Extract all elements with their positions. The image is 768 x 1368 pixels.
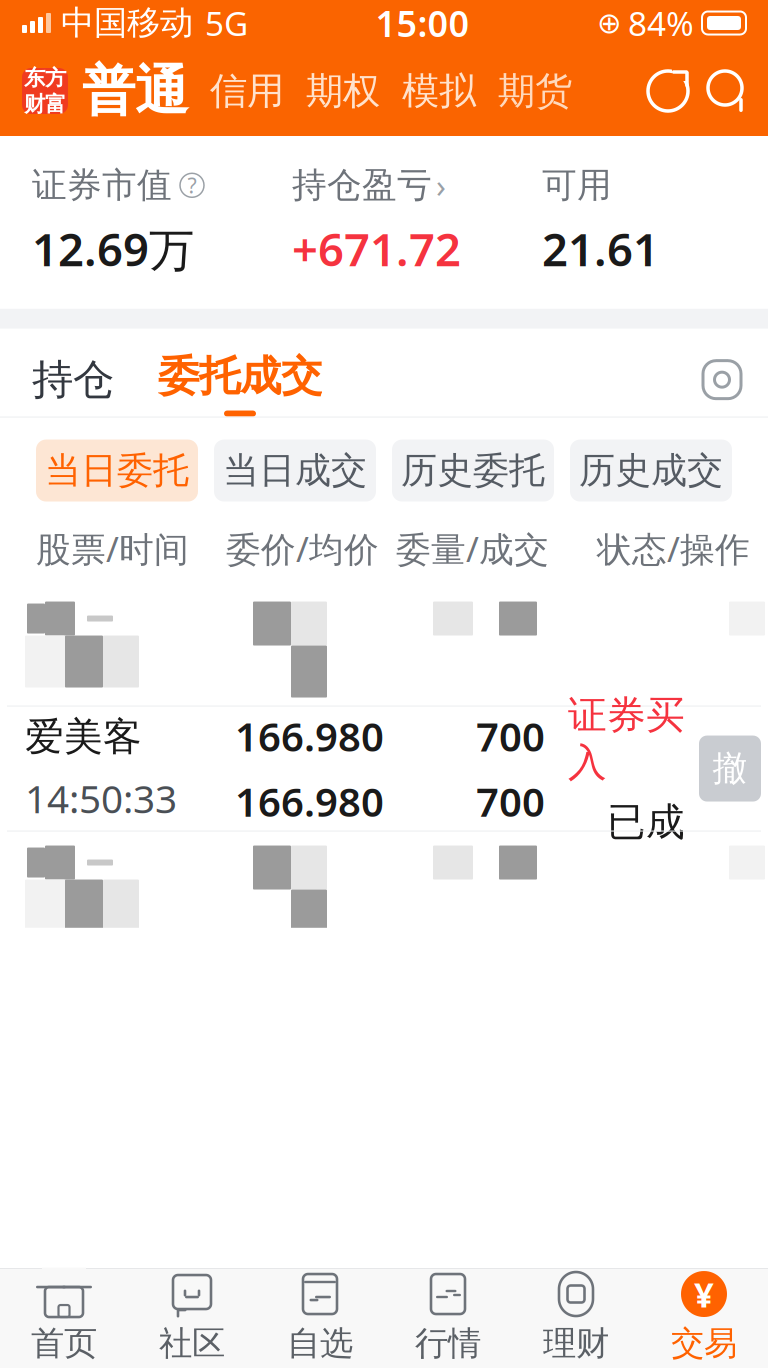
button[interactable]: 历史成交	[570, 439, 732, 501]
staticText: 证券买入	[568, 691, 685, 786]
staticText: 166.980	[235, 774, 384, 828]
button[interactable]: 信用	[188, 68, 284, 114]
button[interactable]: ¥	[640, 1261, 768, 1368]
staticText: 持仓	[32, 354, 114, 405]
staticText: 股票/时间	[36, 525, 189, 571]
staticText: 可用	[542, 164, 612, 207]
button[interactable]: 普通	[68, 58, 188, 124]
staticText: 行情	[415, 1323, 481, 1364]
staticText: ¥	[694, 1271, 714, 1317]
button[interactable]: 首页	[0, 1261, 128, 1368]
staticText: 21.61	[542, 219, 659, 279]
staticText: 委量/成交	[396, 525, 549, 571]
staticText: 财富	[24, 91, 66, 117]
button[interactable]: 理财	[512, 1261, 640, 1368]
staticText: +671.72	[292, 219, 461, 279]
staticText: 社区	[159, 1323, 225, 1364]
button[interactable]: 模拟	[380, 68, 476, 114]
staticText: 700	[476, 709, 545, 762]
staticText: 持仓盈亏	[292, 164, 432, 207]
staticText: 当日成交	[223, 448, 367, 493]
staticText: 委价/均价	[226, 525, 379, 571]
staticText: 期货	[498, 68, 572, 114]
button[interactable]: 持仓	[22, 346, 124, 413]
button[interactable]: 搜索	[704, 67, 752, 115]
staticText: 爱美客	[25, 713, 142, 761]
staticText: 中国移动	[61, 2, 193, 43]
button[interactable]: 东方财富	[22, 68, 68, 114]
staticText: 已撤	[617, 1285, 695, 1333]
staticText: 模拟	[402, 68, 476, 114]
button[interactable]: 自选	[256, 1261, 384, 1368]
button[interactable]: 行情	[384, 1261, 512, 1368]
staticText: 撤	[712, 747, 747, 790]
staticText: 东方	[24, 65, 66, 91]
staticText: 12.69万	[32, 219, 194, 279]
button[interactable]: 设置	[696, 354, 748, 406]
staticText: 首页	[31, 1323, 97, 1364]
staticText: 84%	[628, 1, 694, 45]
staticText: ?	[187, 171, 196, 199]
staticText: 状态/操作	[597, 525, 750, 571]
button[interactable]: 委托成交	[148, 343, 332, 417]
staticText: 证券市值	[32, 164, 172, 207]
button[interactable]: 刷新	[644, 67, 692, 115]
staticText: 委托成交	[158, 351, 322, 402]
staticText: 10:35:31	[25, 1282, 185, 1336]
staticText: 14:50:33	[25, 773, 177, 824]
staticText: 交易	[671, 1323, 737, 1364]
staticText: 历史委托	[401, 448, 545, 493]
button[interactable]: 当日委托	[36, 439, 198, 501]
staticText: 0	[522, 1282, 545, 1336]
staticText: 5G	[205, 1, 248, 45]
button[interactable]: 撤	[699, 735, 761, 801]
button[interactable]: 期货	[476, 68, 572, 114]
staticText: 历史成交	[579, 448, 723, 493]
staticText: 自选	[287, 1323, 353, 1364]
staticText: 信用	[210, 68, 284, 114]
staticText: 15:00	[375, 0, 469, 47]
staticText: 0.000	[235, 1282, 338, 1336]
staticText: 期权	[306, 68, 380, 114]
staticText: ⊕	[597, 6, 622, 40]
staticText: 166.980	[235, 709, 384, 762]
button[interactable]: 持仓盈亏	[292, 164, 542, 279]
button[interactable]: 社区	[128, 1261, 256, 1368]
staticText: 已成	[607, 798, 685, 846]
staticText: 理财	[543, 1323, 609, 1364]
staticText: ›	[436, 164, 446, 206]
staticText: 700	[476, 774, 545, 828]
staticText: 普通	[82, 58, 188, 124]
button[interactable]: 当日成交	[214, 439, 376, 501]
button[interactable]: 历史委托	[392, 439, 554, 501]
button[interactable]: 期权	[284, 68, 380, 114]
staticText: 当日委托	[45, 448, 189, 493]
